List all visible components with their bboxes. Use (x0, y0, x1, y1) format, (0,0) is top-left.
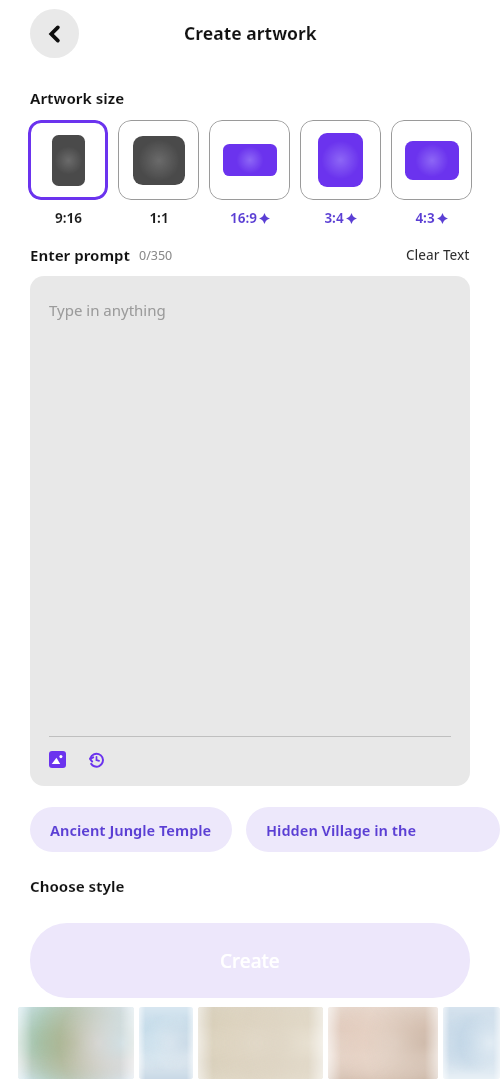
button[interactable]: Back (30, 9, 79, 58)
button[interactable] (443, 1007, 500, 1079)
button[interactable]: Type in anything (30, 276, 470, 786)
staticText: Type in anything (49, 300, 166, 320)
staticText: 9:16 (55, 209, 82, 227)
staticText: Choose style (30, 876, 125, 896)
button[interactable]: Create (30, 923, 470, 998)
button[interactable]: Ancient Jungle Temple (30, 807, 232, 852)
button[interactable]: History (88, 751, 105, 768)
staticText: Create artwork (184, 21, 317, 45)
staticText: Clear Text (406, 246, 470, 264)
button[interactable]: Add image (49, 751, 66, 768)
staticText: Enter prompt (30, 245, 131, 265)
button[interactable]: 3:4 (300, 120, 381, 227)
staticText: Hidden Village in the Mountains (266, 820, 480, 840)
staticText: Artwork size (30, 88, 125, 108)
staticText: Create (220, 948, 280, 974)
button[interactable] (139, 1007, 193, 1079)
staticText: 4:3 (415, 209, 435, 227)
button[interactable]: 16:9 (209, 120, 290, 227)
button[interactable]: 4:3 (391, 120, 472, 227)
button[interactable]: 9:16 (28, 120, 108, 227)
button[interactable]: Clear Text (406, 246, 470, 264)
button[interactable]: Hidden Village in the Mountains (246, 807, 500, 852)
staticText: 1:1 (149, 209, 169, 227)
staticText: 0/350 (139, 247, 173, 264)
staticText: 3:4 (324, 209, 344, 227)
button[interactable]: 1:1 (118, 120, 199, 227)
staticText: 16:9 (230, 209, 257, 227)
button[interactable] (328, 1007, 438, 1079)
button[interactable] (198, 1007, 323, 1079)
staticText: Ancient Jungle Temple (50, 820, 212, 840)
button[interactable] (18, 1007, 134, 1079)
